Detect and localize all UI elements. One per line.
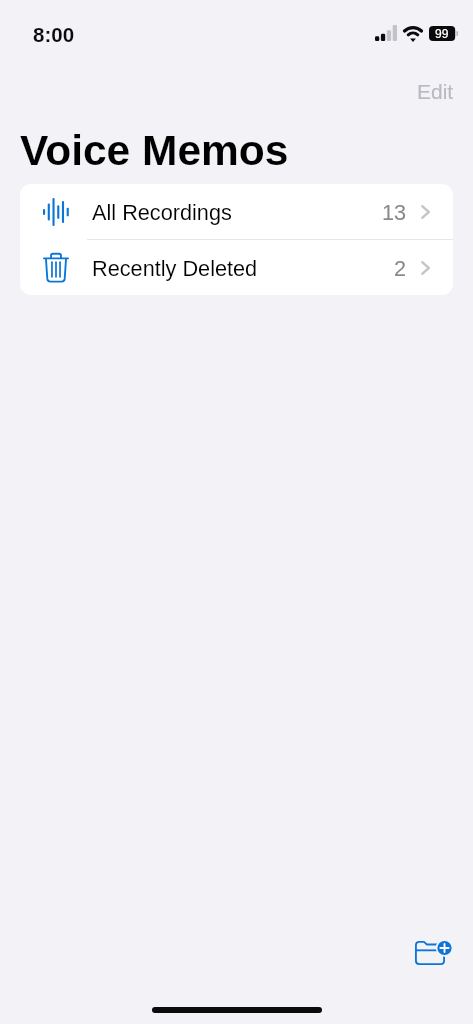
staticText: Recently Deleted: [92, 256, 394, 280]
button[interactable]: New Folder: [410, 930, 456, 976]
staticText: All Recordings: [92, 200, 382, 224]
staticText: Voice Memos: [20, 127, 289, 174]
staticText: 13: [382, 200, 407, 224]
button[interactable]: All Recordings: [20, 184, 453, 239]
staticText: Edit: [417, 80, 454, 103]
button[interactable]: Edit: [405, 74, 466, 109]
button[interactable]: Recently Deleted: [20, 240, 453, 295]
staticText: 2: [394, 256, 407, 280]
staticText: 8:00: [33, 23, 75, 46]
staticText: 99: [435, 27, 449, 40]
